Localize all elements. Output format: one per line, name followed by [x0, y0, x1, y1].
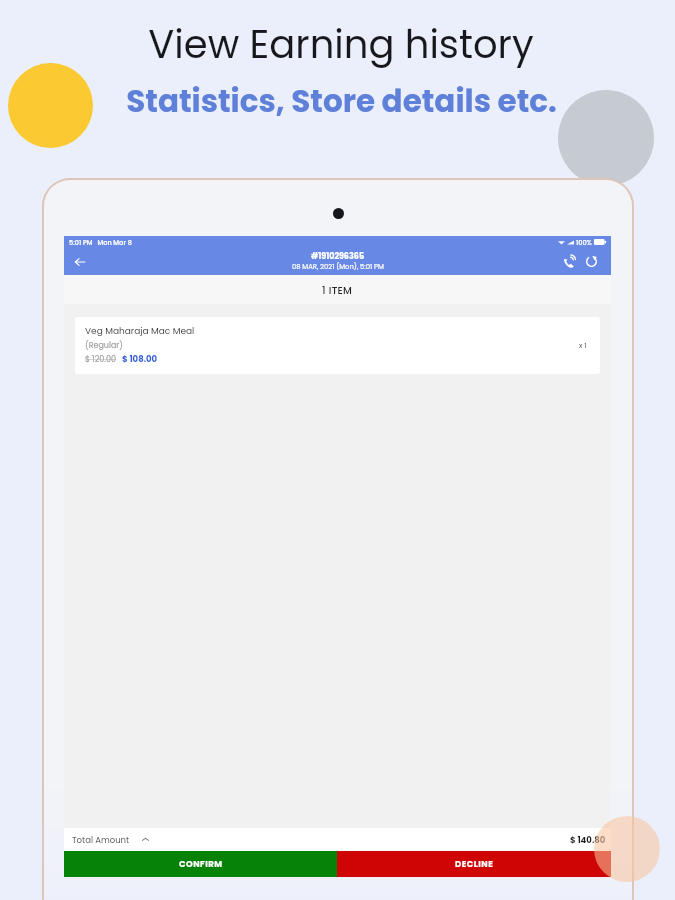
button[interactable]: Back [69, 251, 91, 273]
button[interactable]: Refresh [580, 250, 603, 273]
button[interactable]: Total Amount [64, 828, 611, 851]
staticText: CONFIRM [179, 858, 223, 870]
staticText: $ 120.00 [85, 354, 117, 365]
button[interactable]: CONFIRM [64, 851, 337, 877]
staticText: Veg Maharaja Mac Meal [85, 325, 195, 338]
staticText: #1910296365 [311, 251, 365, 262]
staticText: x 1 [579, 341, 587, 351]
staticText: $ 140.80 [570, 834, 606, 846]
button[interactable]: Call customer [557, 250, 580, 273]
staticText: 100% [576, 238, 592, 247]
staticText: (Regular) [85, 340, 123, 351]
staticText: Total Amount [72, 834, 130, 846]
staticText: $ 108.00 [122, 353, 158, 365]
staticText: View Earning history [148, 18, 534, 72]
button[interactable]: Veg Maharaja Mac Meal [75, 317, 600, 374]
staticText: 08 MAR, 2021 (Mon), 5:01 PM [292, 262, 384, 272]
staticText: 1 ITEM [322, 283, 353, 297]
staticText: DECLINE [455, 858, 494, 870]
staticText: Statistics, Store details etc. [126, 79, 557, 122]
button[interactable]: DECLINE [337, 851, 611, 877]
staticText: 5:01 PM Mon Mar 8 [69, 238, 132, 247]
